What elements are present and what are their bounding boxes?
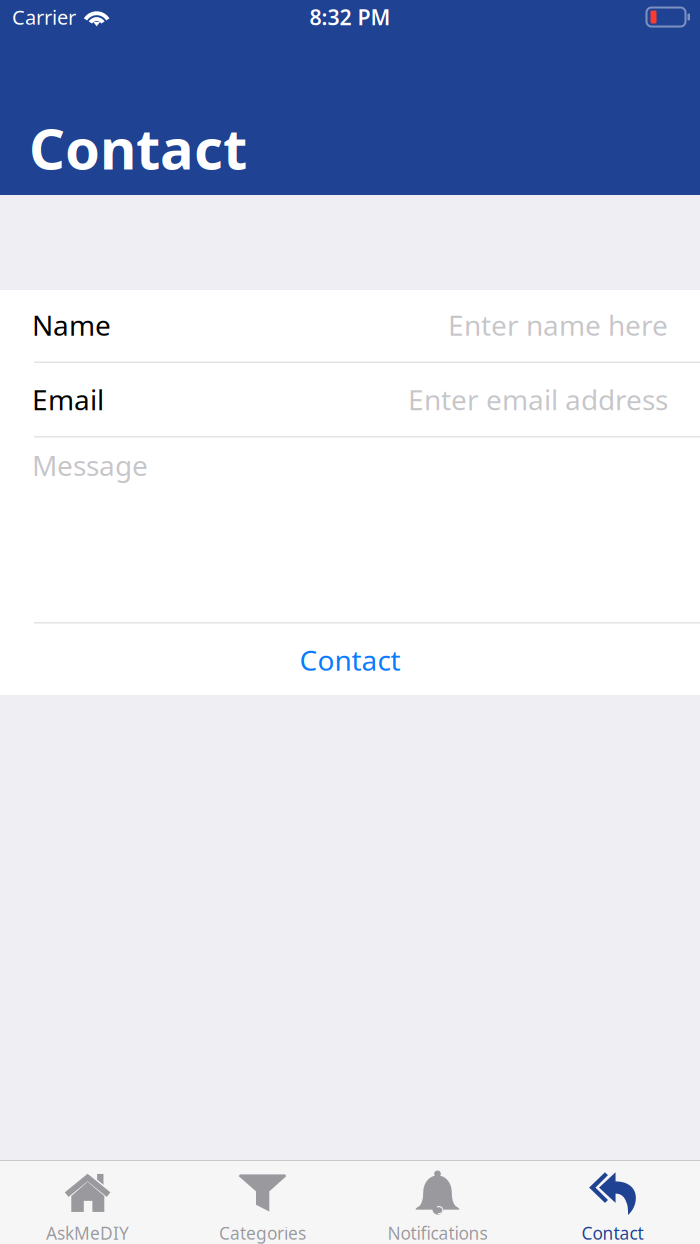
staticText: Enter name here: [448, 306, 668, 344]
staticText: Contact: [581, 1221, 643, 1244]
button[interactable]: Contact: [525, 1161, 700, 1244]
staticText: Carrier: [12, 4, 76, 30]
staticText: 8:32 PM: [309, 3, 390, 31]
staticText: AskMeDIY: [46, 1221, 129, 1244]
staticText: Email: [32, 381, 104, 418]
button[interactable]: Categories: [175, 1161, 350, 1244]
staticText: Categories: [219, 1221, 306, 1244]
button[interactable]: Notifications: [350, 1161, 525, 1244]
staticText: Contact: [29, 111, 247, 185]
staticText: Contact: [299, 641, 400, 679]
staticText: Message: [32, 446, 148, 484]
button[interactable]: Message: [0, 437, 700, 622]
button[interactable]: Name: [0, 288, 700, 361]
staticText: Name: [32, 306, 111, 344]
button[interactable]: Email: [0, 363, 700, 436]
button[interactable]: Contact: [0, 623, 700, 696]
button[interactable]: AskMeDIY: [0, 1161, 175, 1244]
staticText: Enter email address: [408, 381, 668, 418]
staticText: Notifications: [387, 1221, 487, 1244]
